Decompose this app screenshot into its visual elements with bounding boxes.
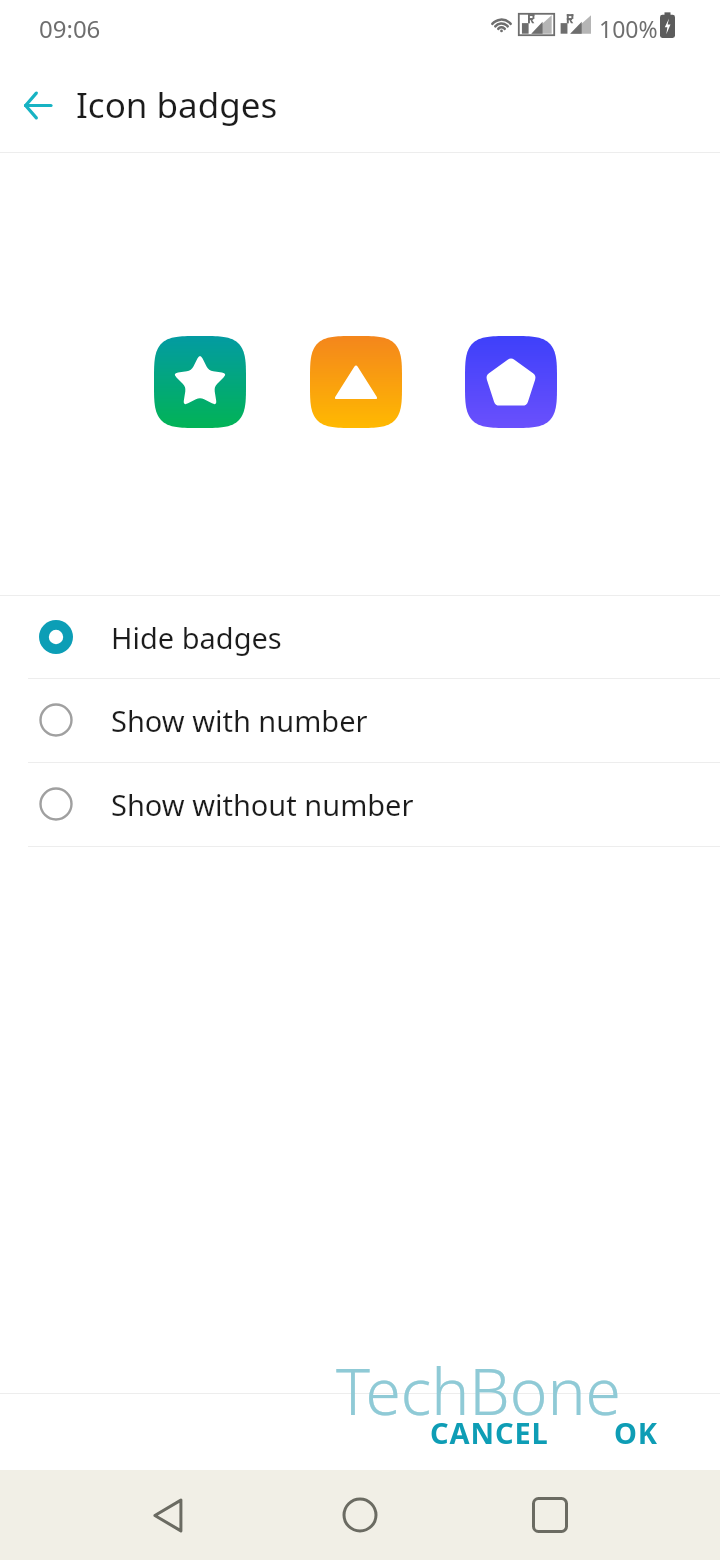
staticText: 09:06 — [39, 12, 101, 45]
button[interactable]: Back — [124, 1471, 212, 1559]
staticText: Show with number — [111, 701, 368, 740]
button[interactable]: Recent apps — [506, 1471, 594, 1559]
staticText: 100% — [599, 13, 658, 44]
button[interactable]: Home — [316, 1471, 404, 1559]
button[interactable]: Hide badges — [0, 595, 720, 679]
staticText: OK — [614, 1413, 658, 1452]
staticText: Show without number — [111, 785, 414, 824]
button[interactable]: Show without number — [0, 762, 720, 846]
staticText: CANCEL — [430, 1413, 549, 1452]
button[interactable]: Navigate up — [12, 79, 64, 131]
button[interactable]: OK — [600, 1401, 672, 1464]
button[interactable]: Show with number — [0, 678, 720, 762]
staticText: TechBone — [336, 1347, 621, 1434]
staticText: Icon badges — [76, 81, 278, 129]
button[interactable]: CANCEL — [416, 1401, 563, 1464]
staticText: Hide badges — [111, 618, 282, 657]
